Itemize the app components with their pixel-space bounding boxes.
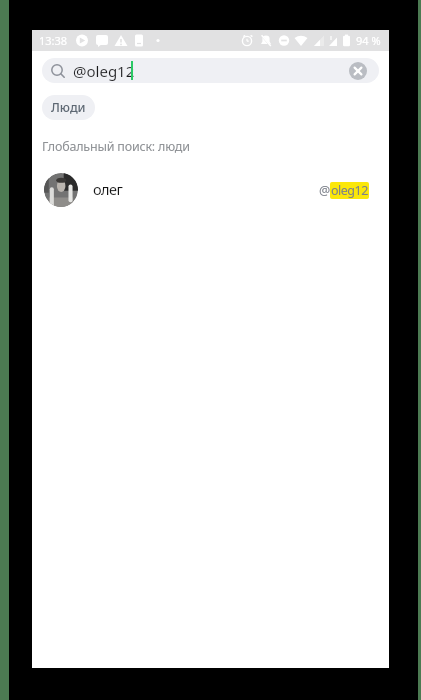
staticText: 13:38 xyxy=(39,33,68,48)
staticText: @ xyxy=(319,182,330,199)
staticText: олег xyxy=(93,179,123,199)
staticText: @oleg12 xyxy=(73,61,135,81)
staticText: Глобальный поиск: люди xyxy=(42,138,190,155)
button[interactable] xyxy=(349,62,367,80)
button[interactable]: Люди xyxy=(42,95,95,120)
button[interactable]: олег xyxy=(32,168,389,212)
staticText: 94 % xyxy=(356,33,381,48)
staticText: Люди xyxy=(51,99,86,116)
button[interactable]: @oleg12 xyxy=(42,58,379,83)
staticText: oleg12 xyxy=(331,182,368,199)
